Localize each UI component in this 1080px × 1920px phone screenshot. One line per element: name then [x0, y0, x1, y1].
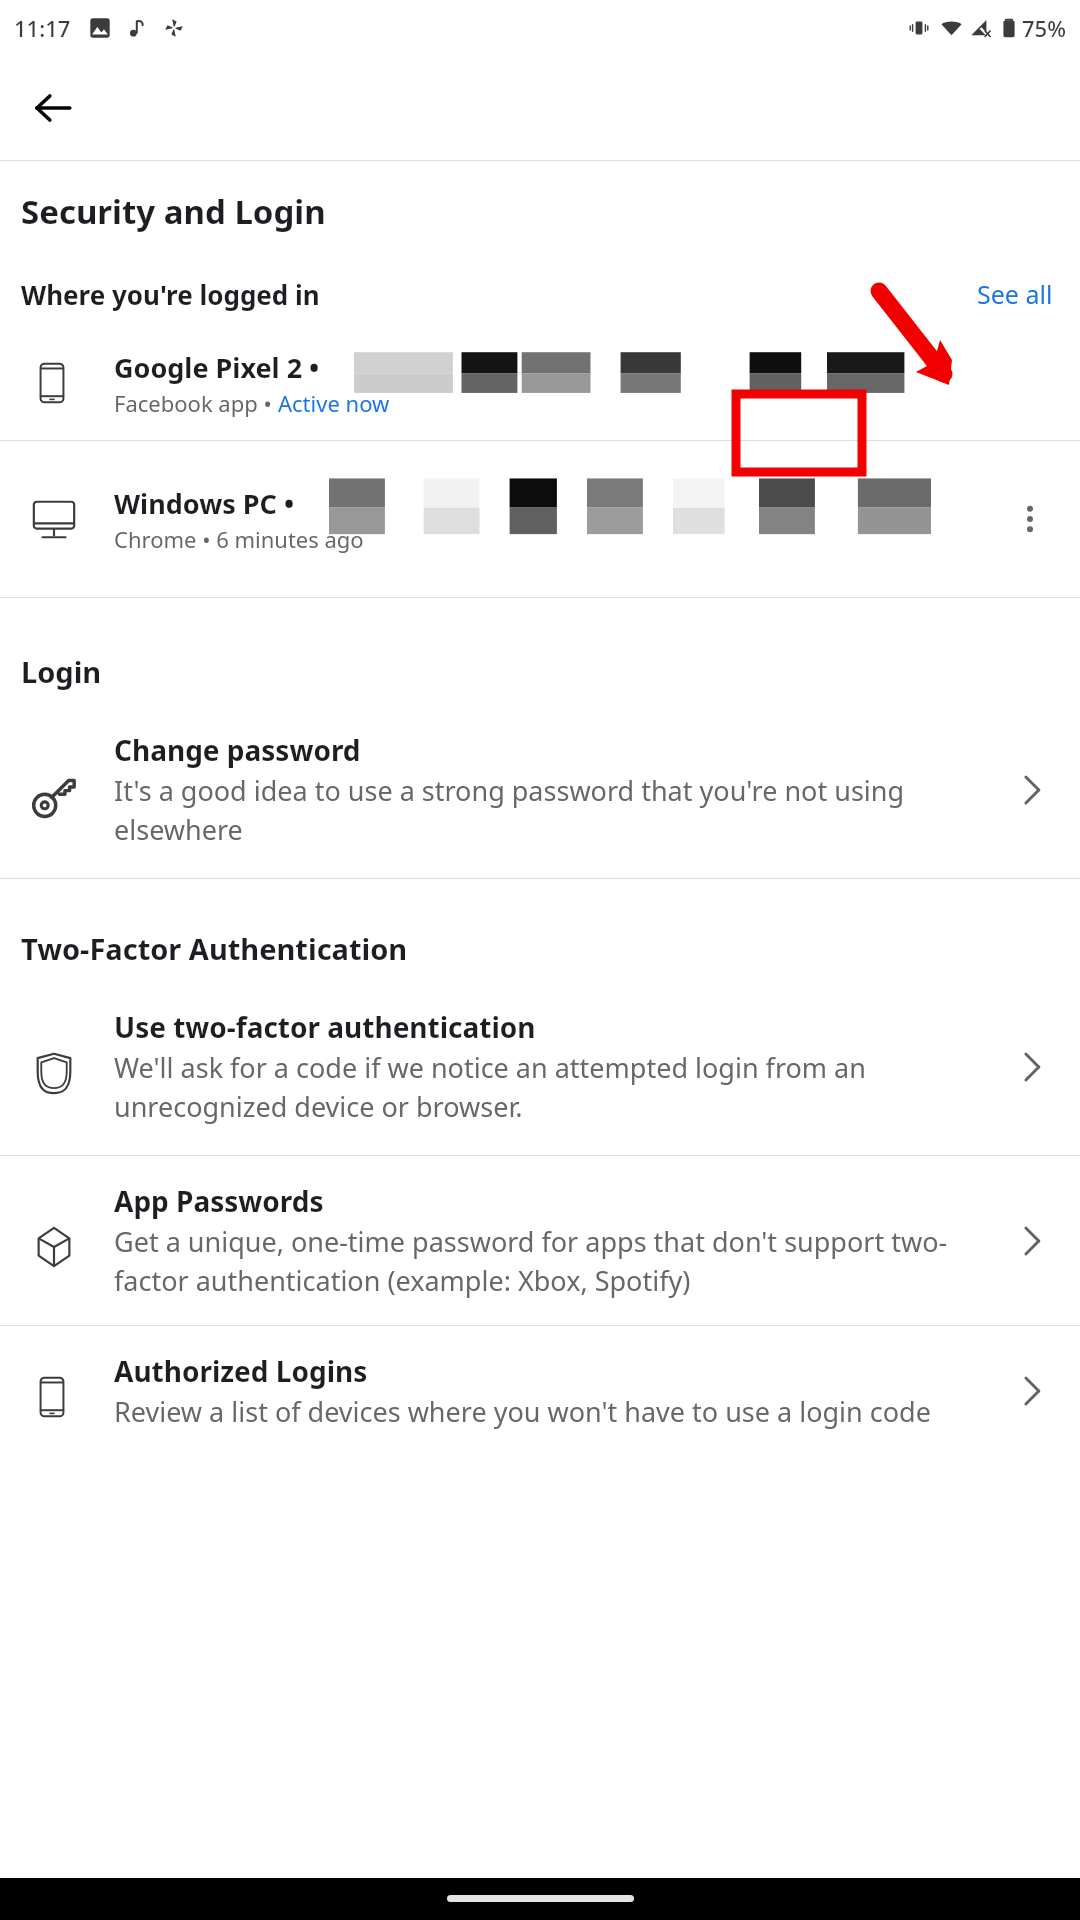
staticText: Two-Factor Authentication: [21, 929, 408, 968]
staticText: 11:17: [14, 13, 71, 43]
staticText: Where you're logged in: [21, 277, 320, 312]
staticText: Windows PC •: [114, 485, 302, 522]
staticText: Authorized Logins: [114, 1352, 368, 1390]
staticText: We'll ask for a code if we notice an att…: [114, 1049, 988, 1125]
button[interactable]: See all: [973, 271, 1057, 317]
staticText: Active now: [278, 388, 390, 418]
staticText: 75%: [1022, 13, 1066, 43]
staticText: Security and Login: [21, 189, 326, 234]
staticText: It's a good idea to use a strong passwor…: [114, 772, 988, 848]
button[interactable]: Google Pixel 2 •: [0, 326, 1080, 440]
staticText: Login: [21, 652, 102, 691]
button[interactable]: Back: [20, 75, 86, 141]
staticText: Get a unique, one-time password for apps…: [114, 1223, 988, 1299]
staticText: Google Pixel 2 •: [114, 349, 327, 386]
button[interactable]: Windows PC •: [0, 441, 1080, 597]
button[interactable]: Change password: [0, 721, 1080, 878]
staticText: Chrome • 6 minutes ago: [114, 524, 364, 554]
staticText: See all: [977, 277, 1053, 311]
staticText: Review a list of devices where you won't…: [114, 1393, 931, 1430]
staticText: Change password: [114, 731, 361, 769]
staticText: Facebook app •: [114, 388, 278, 418]
button[interactable]: More options: [1000, 489, 1060, 549]
staticText: App Passwords: [114, 1182, 324, 1220]
button[interactable]: App Passwords: [0, 1156, 1080, 1325]
staticText: Use two-factor authentication: [114, 1008, 536, 1046]
button[interactable]: Use two-factor authentication: [0, 998, 1080, 1155]
button[interactable]: Authorized Logins: [0, 1326, 1080, 1456]
